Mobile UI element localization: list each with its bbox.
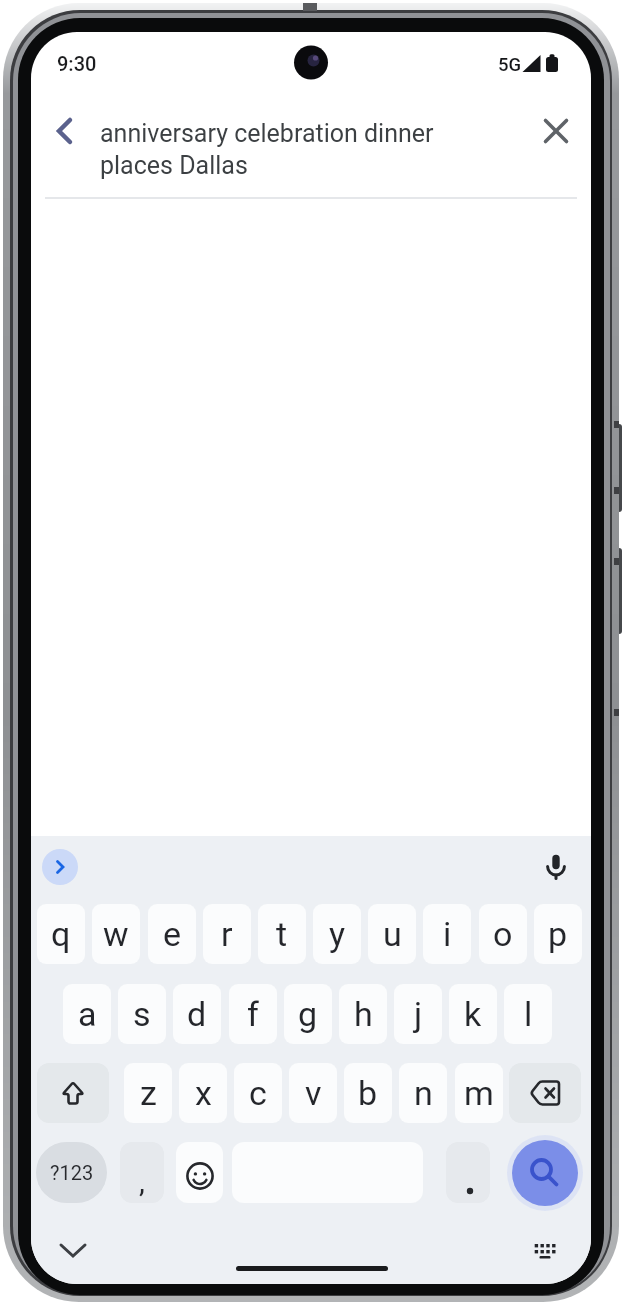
staticText: f xyxy=(247,994,259,1034)
staticText: y xyxy=(329,914,346,954)
button[interactable]: o xyxy=(479,904,527,964)
staticText: d xyxy=(187,994,207,1034)
button[interactable]: q xyxy=(37,904,85,964)
staticText: anniversary celebration dinner places Da… xyxy=(100,119,434,180)
staticText: i xyxy=(443,914,452,954)
staticText: n xyxy=(414,1073,433,1113)
button[interactable] xyxy=(512,1140,578,1206)
staticText: v xyxy=(305,1073,322,1113)
staticText: ?123 xyxy=(50,1161,94,1184)
staticText: w xyxy=(103,914,129,954)
button[interactable]: s xyxy=(118,984,166,1044)
button[interactable] xyxy=(536,844,576,888)
staticText: 5G xyxy=(498,54,522,76)
button[interactable]: p xyxy=(534,904,582,964)
button[interactable]: c xyxy=(234,1063,282,1123)
button[interactable] xyxy=(39,105,91,157)
button[interactable]: i xyxy=(423,904,471,964)
button[interactable]: d xyxy=(173,984,221,1044)
staticText: g xyxy=(298,994,318,1034)
staticText: x xyxy=(195,1073,212,1113)
button[interactable]: u xyxy=(368,904,416,964)
button[interactable]: g xyxy=(284,984,332,1044)
staticText: p xyxy=(548,914,568,954)
button[interactable] xyxy=(525,1234,565,1268)
button[interactable] xyxy=(53,1231,93,1271)
button[interactable]: e xyxy=(148,904,196,964)
button[interactable] xyxy=(509,1063,581,1123)
button[interactable]: , xyxy=(120,1142,164,1203)
button[interactable] xyxy=(42,849,78,885)
staticText: t xyxy=(276,914,288,954)
staticText: c xyxy=(249,1073,267,1113)
staticText: u xyxy=(383,914,402,954)
staticText: a xyxy=(78,994,97,1034)
button[interactable]: l xyxy=(504,984,552,1044)
staticText: b xyxy=(358,1073,378,1113)
button[interactable] xyxy=(529,105,583,157)
button[interactable]: y xyxy=(313,904,361,964)
button[interactable] xyxy=(176,1142,223,1203)
button[interactable]: w xyxy=(92,904,140,964)
staticText: k xyxy=(464,994,482,1034)
button[interactable]: r xyxy=(203,904,251,964)
button[interactable]: b xyxy=(344,1063,392,1123)
staticText: r xyxy=(221,914,233,954)
staticText: m xyxy=(464,1073,494,1113)
button[interactable]: ?123 xyxy=(36,1142,107,1203)
staticText: l xyxy=(524,994,533,1034)
staticText: o xyxy=(493,914,513,954)
staticText: h xyxy=(354,994,373,1034)
staticText: q xyxy=(51,914,71,954)
button[interactable]: a xyxy=(63,984,111,1044)
button[interactable]: f xyxy=(229,984,277,1044)
staticText: , xyxy=(139,1164,145,1199)
button[interactable]: k xyxy=(449,984,497,1044)
button[interactable]: m xyxy=(455,1063,503,1123)
button[interactable]: h xyxy=(339,984,387,1044)
staticText: e xyxy=(163,914,182,954)
staticText: j xyxy=(414,994,423,1034)
button[interactable] xyxy=(37,1063,109,1123)
staticText: z xyxy=(140,1073,157,1113)
staticText: 9:30 xyxy=(57,52,97,75)
button[interactable]: v xyxy=(289,1063,337,1123)
staticText: s xyxy=(133,994,151,1034)
button[interactable] xyxy=(446,1142,490,1203)
button[interactable]: t xyxy=(258,904,306,964)
button[interactable]: x xyxy=(179,1063,227,1123)
button[interactable]: z xyxy=(124,1063,172,1123)
button[interactable]: n xyxy=(399,1063,447,1123)
button[interactable]: j xyxy=(394,984,442,1044)
